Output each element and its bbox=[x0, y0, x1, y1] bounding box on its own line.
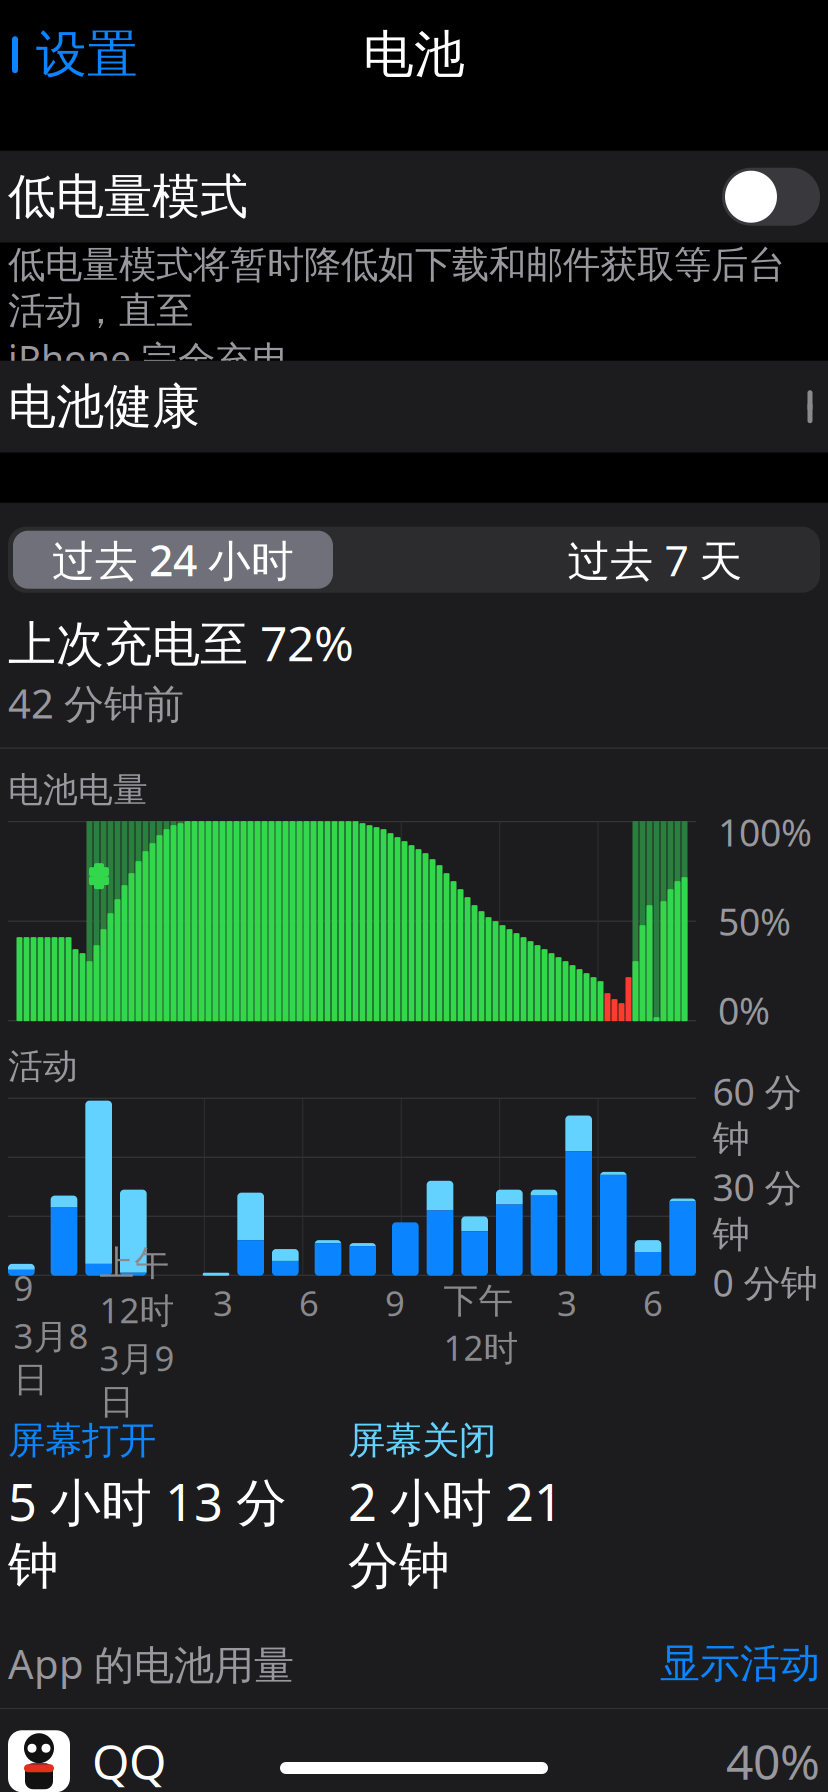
staticText: 9 bbox=[13, 1264, 33, 1310]
staticText: App 的电池用量 bbox=[8, 1637, 294, 1690]
staticText: 3月8日 bbox=[13, 1312, 88, 1401]
staticText: 6 bbox=[299, 1280, 319, 1326]
staticText: 设置 bbox=[36, 24, 138, 86]
staticText: 0 分钟 bbox=[712, 1257, 817, 1307]
staticText: 3月9日 bbox=[99, 1335, 174, 1423]
staticText: 屏幕打开 bbox=[8, 1418, 156, 1464]
button[interactable]: 过去 24 小时 bbox=[13, 531, 333, 589]
button[interactable]: 过去 7 天 bbox=[495, 531, 815, 589]
staticText: 过去 24 小时 bbox=[52, 531, 294, 588]
staticText: 屏幕关闭 bbox=[348, 1418, 496, 1464]
staticText: 30 分钟 bbox=[712, 1162, 801, 1257]
staticText: 上次充电至 72% bbox=[8, 611, 354, 674]
staticText: 6 bbox=[643, 1280, 663, 1326]
staticText: 显示活动 bbox=[660, 1639, 820, 1688]
staticText: 电池 bbox=[363, 24, 465, 86]
staticText: 3 bbox=[213, 1280, 233, 1326]
staticText: 活动 bbox=[8, 1045, 78, 1088]
staticText: 电池电量 bbox=[8, 769, 148, 811]
staticText: 42 分钟前 bbox=[8, 676, 184, 730]
staticText: 0% bbox=[718, 986, 770, 1035]
button[interactable]: 显示活动 bbox=[660, 1633, 820, 1694]
staticText: 50% bbox=[718, 896, 791, 946]
staticText: QQ bbox=[92, 1729, 166, 1792]
staticText: 40% bbox=[726, 1729, 820, 1792]
staticText: 60 分钟 bbox=[712, 1066, 801, 1162]
button[interactable]: QQ bbox=[0, 1709, 828, 1792]
staticText: 9 bbox=[385, 1280, 405, 1326]
staticText: 过去 7 天 bbox=[567, 531, 742, 588]
button[interactable]: 设置 bbox=[0, 14, 138, 96]
staticText: 100% bbox=[718, 807, 812, 857]
staticText: 低电量模式 bbox=[8, 167, 248, 226]
staticText: 下午 bbox=[443, 1280, 513, 1322]
staticText: 上午 bbox=[99, 1242, 169, 1285]
button[interactable]: 电池健康 bbox=[0, 361, 828, 453]
button[interactable]: 低电量模式 bbox=[0, 151, 828, 243]
staticText: 2 小时 21 分钟 bbox=[348, 1468, 563, 1597]
staticText: 12时 bbox=[443, 1324, 518, 1370]
staticText: 5 小时 13 分钟 bbox=[8, 1468, 287, 1597]
staticText: 3 bbox=[557, 1280, 577, 1326]
staticText: 12时 bbox=[99, 1287, 174, 1333]
staticText: 电池健康 bbox=[8, 377, 200, 436]
staticText: 低电量模式将暂时降低如下载和邮件获取等后台活动，直至 iPhone 完全充电。 bbox=[8, 242, 785, 383]
